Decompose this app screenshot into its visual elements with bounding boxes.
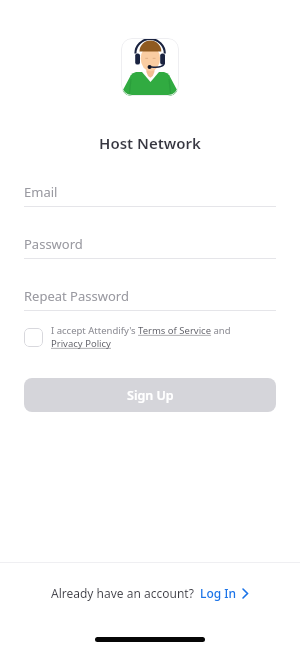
button[interactable]: Email <box>24 176 276 207</box>
button[interactable] <box>24 328 43 347</box>
staticText: Host Network <box>0 133 300 153</box>
staticText: Already have an account? <box>51 585 194 601</box>
button[interactable]: Password <box>24 228 276 259</box>
button[interactable]: Privacy Policy <box>51 337 111 350</box>
button[interactable]: I accept Attendify's Terms of Service an… <box>51 324 231 337</box>
staticText: Password <box>24 235 83 253</box>
staticText: Repeat Password <box>24 287 129 305</box>
button[interactable]: Sign Up <box>24 378 276 412</box>
button[interactable]: Already have an account? <box>0 584 300 602</box>
button[interactable]: Repeat Password <box>24 280 276 311</box>
staticText: Sign Up <box>127 387 174 404</box>
staticText: Log In <box>200 585 237 601</box>
staticText: Email <box>24 183 58 201</box>
